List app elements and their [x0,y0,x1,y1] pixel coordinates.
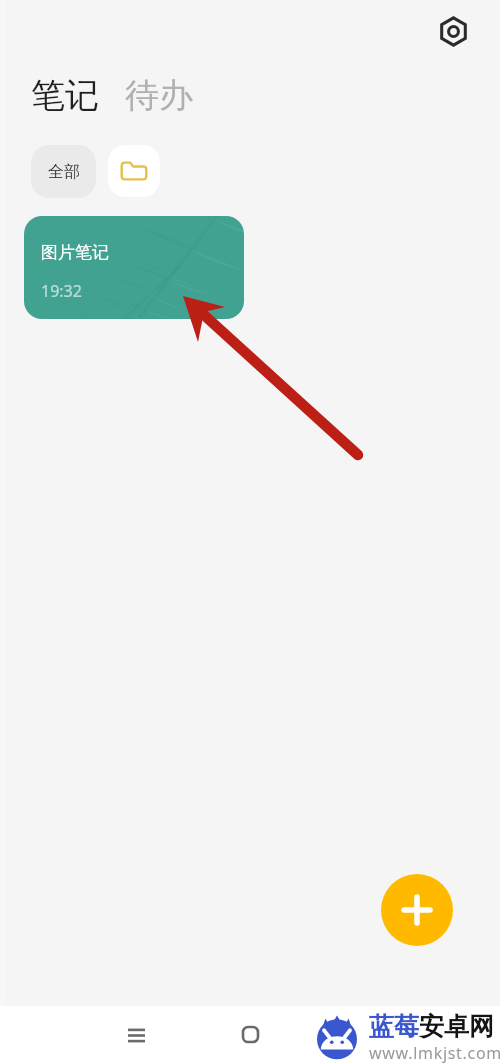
button[interactable]: Home [242,1026,259,1043]
staticText: 待办 [125,74,193,117]
staticText: 安卓网 [419,1011,494,1042]
staticText: www.lmkjst.com [369,1042,500,1064]
button[interactable]: 待办 [125,74,193,117]
button[interactable]: Add note [381,874,453,946]
staticText: 蓝莓 [369,1011,419,1042]
staticText: 图片笔记 [41,242,109,263]
button[interactable]: Recents [128,1027,145,1044]
button[interactable]: 笔记 [31,74,99,117]
staticText: 笔记 [31,74,99,117]
button[interactable]: 全部 [31,145,96,198]
button[interactable]: Settings [430,8,476,54]
staticText: 全部 [48,162,80,182]
staticText: 19:32 [41,280,82,302]
button[interactable]: 图片笔记 [24,216,244,319]
button[interactable]: Folders [108,145,160,197]
